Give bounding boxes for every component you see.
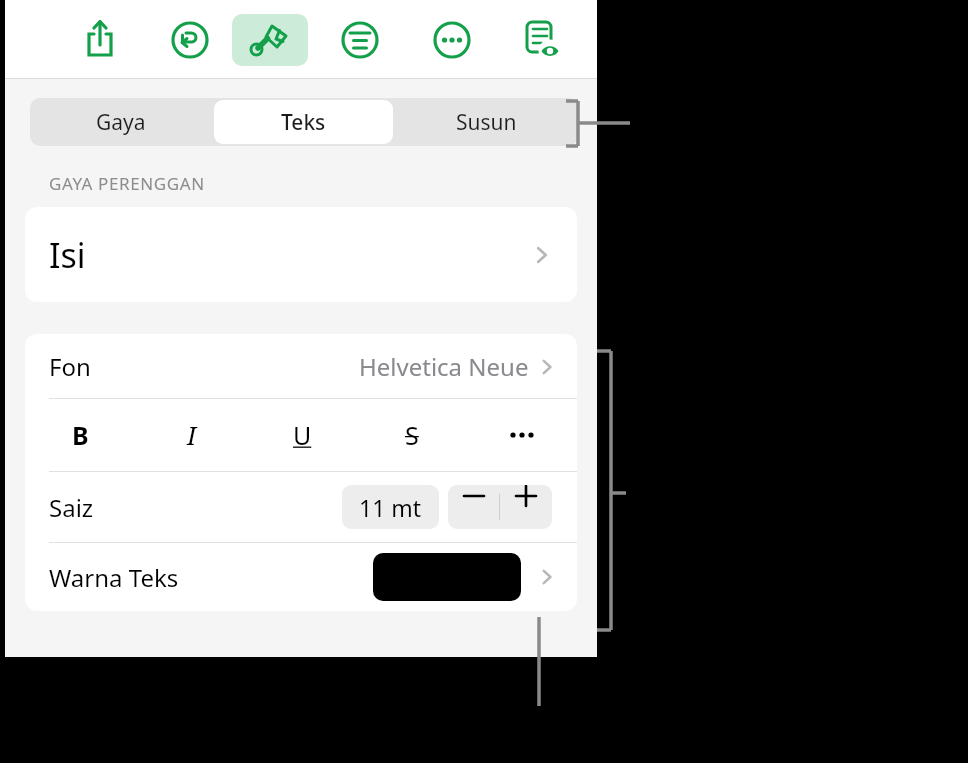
button[interactable]: U [247, 399, 357, 471]
button[interactable]: Increase size [500, 485, 552, 507]
button[interactable]: Format [232, 14, 308, 66]
staticText: Fon [49, 350, 91, 383]
staticText: 11 mt [359, 492, 422, 523]
staticText: S [405, 418, 419, 452]
button[interactable]: Undo [160, 12, 220, 68]
button[interactable]: Share [70, 12, 130, 68]
staticText: Isi [49, 232, 86, 278]
staticText: B [72, 418, 89, 452]
button[interactable]: Teks [214, 100, 393, 144]
staticText: Warna Teks [49, 561, 179, 594]
staticText: Gaya [96, 108, 146, 137]
staticText: U [293, 418, 312, 452]
button[interactable]: More [422, 12, 482, 68]
staticText: Teks [281, 108, 326, 137]
staticText: Saiz [49, 491, 94, 524]
staticText: I [187, 418, 197, 452]
button[interactable]: Isi [25, 207, 577, 302]
staticText: Susun [456, 108, 517, 137]
button[interactable]: I [136, 399, 247, 471]
staticText: GAYA PERENGGAN [49, 172, 205, 195]
button[interactable]: 11 mt [342, 485, 439, 529]
button[interactable]: Warna Teks [25, 543, 577, 611]
button[interactable]: Fon [25, 334, 577, 398]
button[interactable] [467, 399, 577, 471]
button[interactable]: Gaya [32, 100, 210, 144]
button[interactable]: Decrease size [448, 485, 499, 507]
button[interactable]: Preview [510, 12, 570, 68]
button[interactable]: Paragraph [330, 12, 390, 68]
button[interactable]: Susun [397, 100, 576, 144]
staticText: Helvetica Neue [359, 350, 529, 383]
button[interactable]: S [357, 399, 467, 471]
button[interactable]: B [25, 399, 136, 471]
